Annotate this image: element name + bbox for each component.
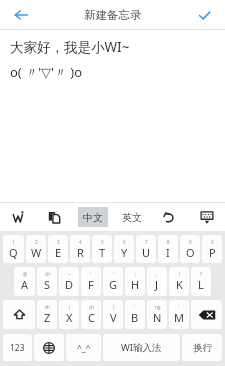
staticText: 7 (145, 239, 148, 245)
button[interactable]: Save (183, 0, 225, 30)
staticText: M (174, 310, 184, 325)
button[interactable]: Paste (36, 203, 73, 231)
button[interactable]: Undo (151, 203, 188, 231)
staticText: G (109, 277, 118, 292)
button[interactable]: ; (125, 267, 145, 296)
button[interactable]: 英文 (112, 203, 151, 231)
button[interactable]: 4 (70, 235, 90, 263)
staticText: T (99, 245, 106, 260)
staticText: , (156, 271, 158, 277)
button[interactable]: Back (0, 0, 42, 30)
staticText: ch (89, 304, 94, 310)
button[interactable]: 3 (48, 235, 68, 263)
staticText: K (176, 277, 183, 292)
button[interactable]: Shift (3, 300, 35, 329)
button[interactable]: ^_^ (66, 334, 101, 361)
button[interactable]: ! (169, 267, 189, 296)
staticText: U (142, 245, 151, 260)
staticText: 6 (123, 239, 126, 245)
staticText: ' (134, 304, 136, 310)
staticText: E (55, 245, 62, 260)
staticText: ; (135, 271, 137, 277)
staticText: 换行 (193, 342, 212, 354)
button[interactable]: WI输入法 (103, 334, 180, 361)
staticText: ^_^ (77, 342, 91, 354)
button[interactable]: 7 (136, 235, 156, 263)
staticText: A (21, 277, 29, 292)
staticText: 0 (211, 239, 214, 245)
button[interactable]: , (147, 267, 167, 296)
button[interactable]: zh (37, 300, 57, 329)
staticText: 2 (35, 239, 38, 245)
staticText: ( (69, 304, 71, 310)
button[interactable]: 5 (92, 235, 112, 263)
staticText: 9 (189, 239, 192, 245)
staticText: F (88, 277, 94, 292)
button[interactable]: Handwriting (0, 203, 36, 231)
staticText: D (65, 277, 74, 292)
button[interactable]: 1 (3, 235, 24, 263)
staticText: V (110, 310, 117, 325)
staticText: H (131, 277, 140, 292)
staticText: ) (113, 304, 115, 310)
staticText: 4 (79, 239, 82, 245)
staticText: 5 (101, 239, 104, 245)
button[interactable]: ' (169, 300, 189, 329)
staticText: L (198, 277, 204, 292)
button[interactable]: ng (147, 300, 167, 329)
button[interactable]: ~ (59, 267, 79, 296)
staticText: ~ (68, 271, 71, 277)
staticText: ng (155, 304, 161, 310)
button[interactable]: ' (103, 267, 123, 296)
button[interactable]: @ (14, 267, 35, 296)
staticText: 大家好，我是小WI~ (10, 38, 130, 56)
staticText: 新建备忘录 (84, 8, 142, 22)
staticText: S (44, 277, 51, 292)
button[interactable]: 6 (114, 235, 134, 263)
button[interactable]: ch (81, 300, 101, 329)
button[interactable]: 8 (158, 235, 178, 263)
button[interactable]: 2 (26, 235, 46, 263)
staticText: N (153, 310, 162, 325)
staticText: 1 (12, 239, 15, 245)
button[interactable]: sh (37, 267, 57, 296)
staticText: sh (45, 271, 50, 277)
button[interactable]: 0 (202, 235, 222, 263)
staticText: I (166, 245, 170, 260)
button[interactable]: 9 (180, 235, 200, 263)
button[interactable]: Change language (34, 334, 64, 361)
button[interactable]: ( (59, 300, 79, 329)
staticText: 123 (10, 342, 25, 354)
staticText: ' (178, 304, 180, 310)
button[interactable]: ' (125, 300, 145, 329)
staticText: C (88, 310, 95, 325)
button[interactable]: ? (191, 267, 211, 296)
staticText: O (186, 245, 195, 260)
button[interactable]: Backspace (191, 300, 222, 329)
staticText: 8 (167, 239, 170, 245)
staticText: zh (45, 304, 50, 310)
staticText: 英文 (122, 211, 142, 224)
button[interactable]: Hide keyboard (188, 203, 225, 231)
staticText: R (77, 245, 84, 260)
staticText: 3 (57, 239, 60, 245)
button[interactable]: ' (81, 267, 101, 296)
staticText: WI输入法 (121, 341, 162, 354)
staticText: W (31, 245, 42, 260)
button[interactable]: 大家好，我是小WI~ (0, 30, 225, 202)
staticText: B (131, 310, 139, 325)
button[interactable]: 换行 (182, 334, 222, 361)
button[interactable]: 123 (3, 334, 32, 361)
staticText: Z (44, 310, 51, 325)
button[interactable]: ) (103, 300, 123, 329)
staticText: ' (113, 271, 115, 277)
staticText: o( 〃'▽'〃 )o (10, 63, 83, 81)
staticText: ? (200, 271, 202, 277)
button[interactable]: 中文 (73, 203, 112, 231)
staticText: X (66, 310, 73, 325)
staticText: ' (90, 271, 92, 277)
staticText: P (209, 245, 216, 260)
staticText: Y (121, 245, 128, 260)
staticText: ! (179, 271, 181, 277)
staticText: Q (9, 245, 18, 260)
